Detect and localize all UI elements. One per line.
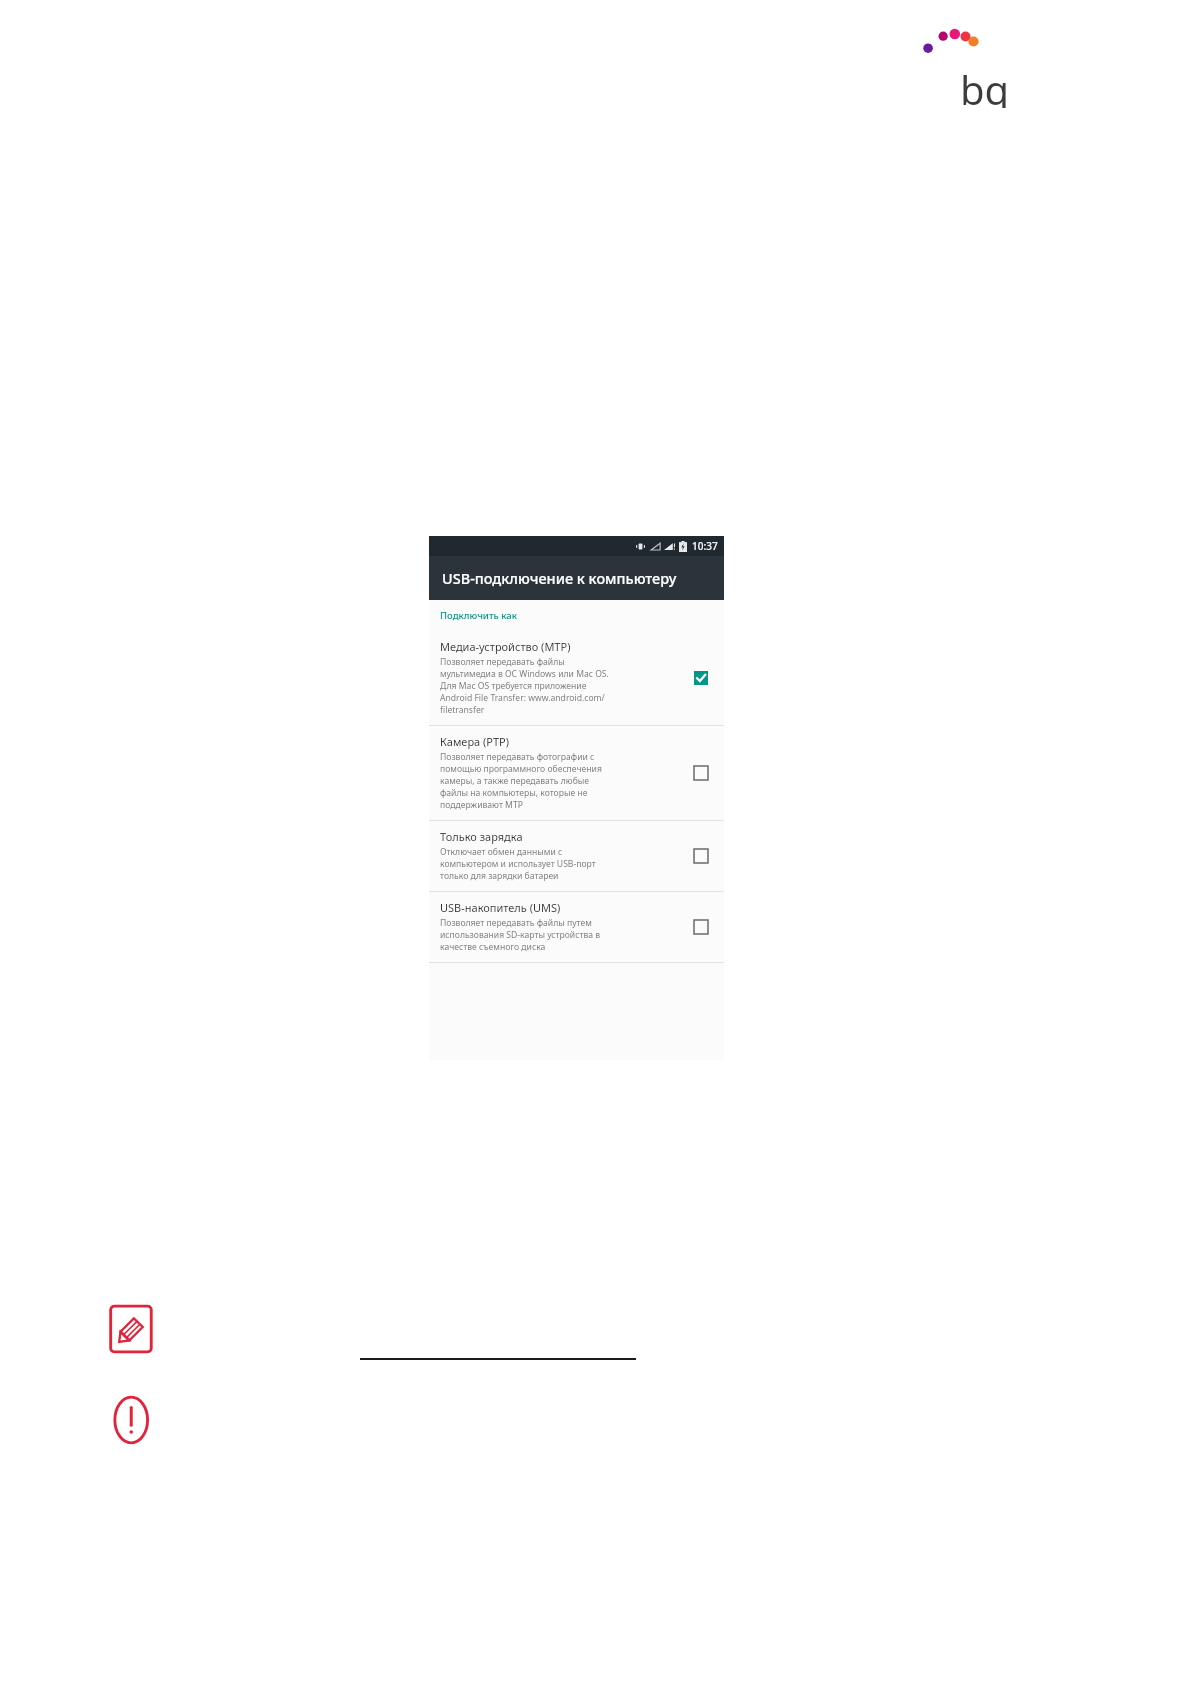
staticText: поддерживают MTP (440, 799, 523, 811)
staticText: помощью программного обеспечения (440, 763, 602, 775)
button[interactable]: Камера (PTP) (688, 760, 714, 786)
staticText: Для Mac OS требуется приложение (440, 680, 587, 692)
button[interactable]: Только зарядка (429, 821, 724, 891)
staticText: Android File Transfer: www.android.com/ (440, 692, 605, 704)
staticText: камеры, а также передавать любые (440, 775, 590, 787)
staticText: 10:37 (692, 539, 718, 553)
staticText: filetransfer (440, 704, 485, 716)
button[interactable]: USB-накопитель (UMS) (688, 914, 714, 940)
staticText: USB-подключение к компьютеру (442, 568, 677, 588)
staticText: использования SD-карты устройства в (440, 929, 601, 941)
staticText: Медиа-устройство (MTP) (440, 639, 571, 654)
staticText: файлы на компьютеры, которые не (440, 787, 588, 799)
button[interactable]: Только зарядка (688, 843, 714, 869)
staticText: Только зарядка (440, 829, 523, 844)
staticText: мультимедиа в ОС Windows или Mac OS. (440, 668, 609, 680)
other: Note (106, 1303, 158, 1355)
staticText: Камера (PTP) (440, 734, 510, 749)
button[interactable]: Медиа-устройство (MTP) (429, 631, 724, 725)
staticText: компьютером и использует USB-порт (440, 858, 596, 870)
staticText: bq (960, 62, 1010, 108)
button[interactable]: USB-накопитель (UMS) (429, 892, 724, 962)
staticText: Отключает обмен данными с (440, 846, 563, 858)
staticText: Позволяет передавать файлы (440, 656, 565, 668)
button[interactable]: Камера (PTP) (429, 726, 724, 820)
staticText: USB-накопитель (UMS) (440, 900, 561, 915)
staticText: Позволяет передавать файлы путем (440, 917, 592, 929)
staticText: только для зарядки батареи (440, 870, 559, 882)
other: Warning (106, 1394, 158, 1446)
staticText: качестве съемного диска (440, 941, 546, 953)
button[interactable]: USB-подключение к компьютеру (429, 556, 724, 600)
staticText: Позволяет передавать фотографии с (440, 751, 595, 763)
button[interactable]: Медиа-устройство (MTP) (688, 665, 714, 691)
staticText: Подключить как (440, 609, 517, 622)
